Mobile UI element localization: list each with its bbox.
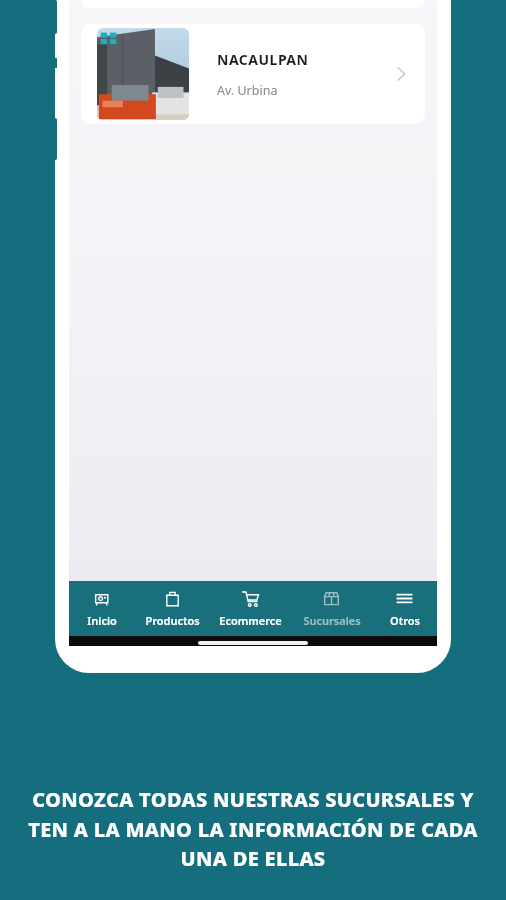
button[interactable]: Otros <box>372 581 437 636</box>
staticText: NACAULPAN <box>217 50 309 69</box>
staticText: Av. Urbina <box>217 82 278 99</box>
button[interactable]: NACAULPAN <box>81 24 425 124</box>
button[interactable]: Productos <box>135 581 210 636</box>
staticText: Sucursales <box>303 613 361 628</box>
staticText: Otros <box>390 613 420 628</box>
button[interactable]: Inicio <box>69 581 135 636</box>
staticText: CONOZCA TODAS NUESTRAS SUCURSALES Y TEN … <box>20 786 486 872</box>
button[interactable]: Ver detalle de la sucursal <box>381 54 421 94</box>
button[interactable]: Sucursales <box>291 581 372 636</box>
button[interactable]: Ecommerce <box>210 581 291 636</box>
staticText: Ecommerce <box>219 613 282 628</box>
staticText: Inicio <box>87 613 117 628</box>
staticText: Productos <box>145 613 200 628</box>
